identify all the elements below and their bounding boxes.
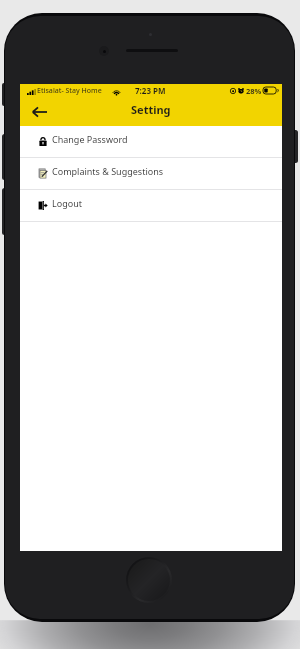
staticText: 7:23 PM: [135, 85, 166, 96]
staticText: Change Password: [52, 133, 128, 145]
staticText: Complaints & Suggestions: [52, 165, 164, 177]
staticText: Etisalat- Stay Home: [37, 86, 102, 96]
staticText: 28%: [246, 86, 262, 96]
staticText: Setting: [131, 102, 171, 117]
staticText: Logout: [52, 197, 82, 209]
button[interactable]: Change Password: [20, 126, 282, 157]
button[interactable]: Complaints & Suggestions: [20, 158, 282, 189]
button[interactable]: Logout: [20, 190, 282, 221]
button[interactable]: Back: [26, 99, 52, 125]
